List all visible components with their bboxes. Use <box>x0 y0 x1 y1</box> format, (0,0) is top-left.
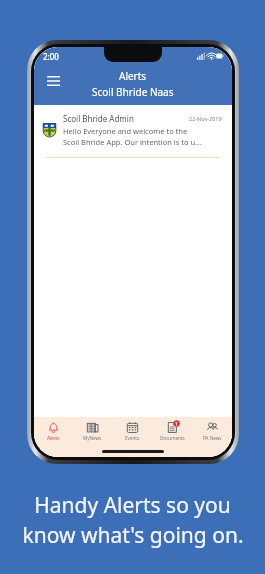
button[interactable]: Alerts <box>34 417 73 445</box>
staticText: know what's going on. <box>22 521 244 550</box>
staticText: Handy Alerts so you <box>34 491 231 520</box>
button[interactable]: Open navigation menu <box>42 70 64 92</box>
staticText: Events <box>125 435 140 441</box>
button[interactable]: PA News <box>192 417 232 445</box>
staticText: PA News <box>203 435 222 441</box>
staticText: Alerts <box>47 435 60 441</box>
button[interactable]: Events <box>112 417 152 445</box>
staticText: Alerts <box>119 69 147 83</box>
staticText: 1 <box>175 421 178 427</box>
button[interactable]: MyNews <box>73 417 112 445</box>
staticText: MyNews <box>83 435 102 441</box>
button[interactable]: Scoil Bhride Admin <box>34 105 232 151</box>
staticText: Hello Everyone and welcome to the <box>63 126 188 136</box>
staticText: 2:00 <box>43 51 59 62</box>
staticText: Scoil Bhride Naas <box>92 85 174 99</box>
button[interactable]: Documents <box>152 417 192 445</box>
staticText: Scoil Bhride App. Our intention is to u.… <box>63 137 202 147</box>
staticText: Documents <box>160 435 185 441</box>
staticText: 22-Nov-2019 <box>189 115 222 122</box>
staticText: Scoil Bhride Admin <box>63 113 134 124</box>
